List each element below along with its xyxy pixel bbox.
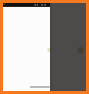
button[interactable]: Navigation drawer open	[0, 0, 89, 94]
